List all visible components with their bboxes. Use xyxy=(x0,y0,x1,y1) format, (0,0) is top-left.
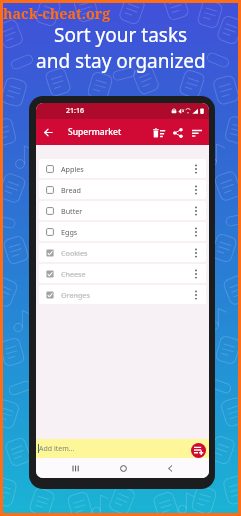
button[interactable]: More options xyxy=(189,183,203,197)
button[interactable]: Recents xyxy=(66,459,84,477)
button[interactable]: Apples xyxy=(39,159,206,178)
staticText: Cheese xyxy=(61,269,86,279)
staticText: Bread xyxy=(61,185,82,195)
staticText: Cookies xyxy=(61,248,88,258)
button[interactable]: More options xyxy=(189,225,203,239)
button[interactable]: Share xyxy=(168,123,187,142)
staticText: 21:16 xyxy=(66,106,84,116)
button[interactable]: More options xyxy=(189,288,203,302)
button[interactable]: Bread xyxy=(39,180,206,199)
button[interactable]: Cheese xyxy=(39,264,206,283)
button[interactable]: More options xyxy=(189,267,203,281)
button[interactable]: Back xyxy=(39,123,58,142)
staticText: Sort your tasks xyxy=(54,22,188,48)
button[interactable]: More options xyxy=(189,246,203,260)
button[interactable]: Eggs xyxy=(39,222,206,241)
button[interactable]: More options xyxy=(189,162,203,176)
button[interactable]: Butter xyxy=(39,201,206,220)
staticText: Supermarket xyxy=(68,126,122,138)
button[interactable]: Back xyxy=(161,459,179,477)
button[interactable]: Sort xyxy=(187,123,206,142)
staticText: hack-cheat.org xyxy=(3,4,111,23)
staticText: Apples xyxy=(61,164,84,174)
button[interactable]: Add item xyxy=(191,443,206,458)
staticText: Butter xyxy=(61,206,83,216)
button[interactable]: Home xyxy=(114,459,132,477)
button[interactable]: Add item... xyxy=(36,439,209,458)
staticText: Eggs xyxy=(61,227,78,237)
button[interactable]: Oranges xyxy=(39,285,206,304)
button[interactable]: More options xyxy=(189,204,203,218)
staticText: and stay organized xyxy=(36,48,206,74)
button[interactable]: Delete checked items xyxy=(149,123,168,142)
staticText: Oranges xyxy=(61,290,90,300)
staticText: Add item... xyxy=(39,444,75,454)
button[interactable]: Cookies xyxy=(39,243,206,262)
